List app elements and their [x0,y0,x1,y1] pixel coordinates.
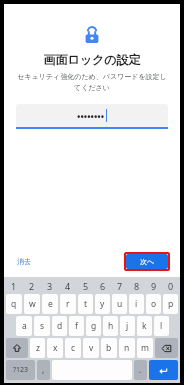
staticText: p [168,298,174,310]
button[interactable]: 次へ [126,254,168,269]
button[interactable]: Enter [149,360,178,380]
button[interactable]: v [83,338,99,358]
button[interactable]: 4 [59,279,77,293]
button[interactable]: h [103,316,118,336]
button[interactable]: 8 [128,279,145,293]
button[interactable]: j [120,316,135,336]
button[interactable]: e [42,294,58,314]
button[interactable]: w [24,294,40,314]
button[interactable]: f [69,316,84,336]
button[interactable]: b [101,338,117,358]
staticText: , [42,364,45,376]
staticText: i [135,298,138,310]
staticText: r [66,298,70,310]
staticText: e [48,298,53,310]
button[interactable]: 0 [162,279,179,293]
staticText: 次へ [140,257,155,266]
staticText: q [11,298,17,310]
staticText: s [40,320,45,332]
staticText: 2 [29,280,35,292]
staticText: g [91,320,97,332]
button[interactable]: m [137,338,153,358]
staticText: w [29,298,36,310]
button[interactable]: Backspace [155,338,178,358]
staticText: f [75,320,78,332]
button[interactable]: 9 [145,279,162,293]
staticText: 0 [168,280,174,292]
button[interactable]: 5 [77,279,94,293]
staticText: n [124,342,130,354]
button[interactable]: d [52,316,67,336]
button[interactable]: 7 [111,279,128,293]
staticText: l [160,320,163,332]
staticText: 6 [100,280,106,292]
staticText: 4 [65,280,71,292]
staticText: 7 [117,280,123,292]
button[interactable]: p [163,294,178,314]
button[interactable]: , [37,360,50,380]
staticText: u [117,298,123,310]
button[interactable]: a [16,316,32,336]
button[interactable]: x [47,338,63,358]
staticText: z [36,342,40,354]
button[interactable]: o [146,294,161,314]
staticText: o [151,298,157,310]
staticText: . [139,364,142,376]
staticText: j [126,320,129,332]
staticText: t [84,298,88,310]
button[interactable]: t [78,294,93,314]
staticText: k [142,320,147,332]
staticText: y [100,298,105,310]
button[interactable]: 消去 [14,254,34,269]
staticText: セキュリティ強化のため、パスワードを設定してください [16,72,168,92]
button[interactable]: r [60,294,76,314]
button[interactable]: y [95,294,110,314]
button[interactable]: . [134,360,147,380]
button[interactable]: q [6,294,22,314]
button[interactable]: 2 [23,279,41,293]
staticText: 消去 [17,257,31,266]
button[interactable]: 1 [5,279,23,293]
button[interactable]: k [137,316,152,336]
button[interactable]: i [129,294,144,314]
staticText: c [71,342,76,354]
staticText: m [141,342,149,354]
staticText: x [53,342,58,354]
staticText: 画面ロックの設定 [4,52,180,67]
button[interactable]: ?123 [6,360,35,380]
staticText: b [106,342,112,354]
button[interactable]: Shift [6,338,28,358]
staticText: •••••••• [77,110,105,122]
button[interactable]: c [65,338,81,358]
button[interactable]: n [119,338,135,358]
button[interactable]: s [34,316,50,336]
staticText: 8 [134,280,140,292]
staticText: 3 [47,280,53,292]
staticText: d [57,320,63,332]
button[interactable]: 3 [41,279,59,293]
button[interactable]: 6 [94,279,111,293]
button[interactable]: •••••••• [16,104,168,127]
button[interactable]: l [154,316,169,336]
staticText: 1 [11,280,17,292]
button[interactable]: g [86,316,101,336]
staticText: ?123 [13,365,29,375]
staticText: 5 [83,280,89,292]
button[interactable]: u [112,294,127,314]
staticText: a [22,320,27,332]
staticText: 9 [151,280,157,292]
staticText: v [89,342,94,354]
staticText: h [108,320,114,332]
button[interactable]: z [30,338,45,358]
